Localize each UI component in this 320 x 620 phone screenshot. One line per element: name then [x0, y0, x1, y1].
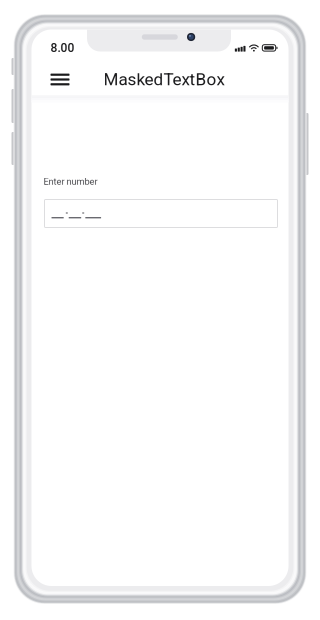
- staticText: 8.00: [50, 41, 74, 55]
- button[interactable]: Menu: [45, 64, 75, 94]
- staticText: MaskedTextBox: [103, 69, 224, 89]
- staticText: Enter number: [43, 176, 97, 187]
- button[interactable]: Enter number: [44, 199, 277, 227]
